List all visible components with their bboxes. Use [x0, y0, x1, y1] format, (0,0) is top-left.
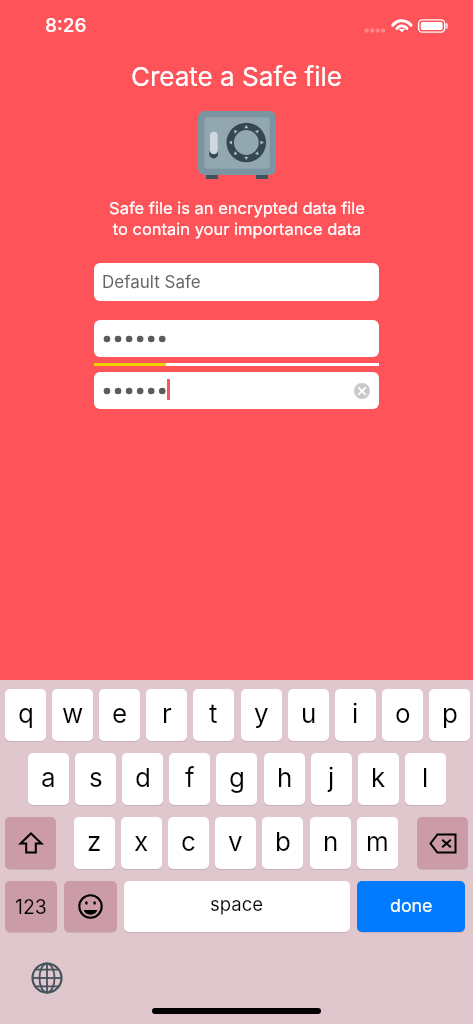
- staticText: q: [18, 698, 34, 729]
- button[interactable]: Backspace: [417, 817, 468, 869]
- staticText: p: [442, 698, 458, 729]
- button[interactable]: f: [169, 753, 210, 805]
- button[interactable]: a: [28, 753, 69, 805]
- staticText: n: [323, 826, 339, 857]
- staticText: m: [366, 826, 389, 857]
- button[interactable]: h: [264, 753, 305, 805]
- button[interactable]: y: [241, 689, 282, 741]
- staticText: Create a Safe file: [131, 61, 342, 92]
- staticText: e: [112, 698, 128, 729]
- staticText: y: [254, 698, 269, 729]
- staticText: g: [229, 762, 245, 793]
- button[interactable]: z: [74, 817, 115, 869]
- button[interactable]: w: [52, 689, 93, 741]
- staticText: 8:26: [45, 14, 87, 37]
- staticText: r: [162, 698, 172, 729]
- button[interactable]: v: [215, 817, 256, 869]
- staticText: t: [209, 698, 218, 729]
- staticText: x: [134, 826, 149, 857]
- button[interactable]: u: [288, 689, 329, 741]
- button[interactable]: p: [429, 689, 470, 741]
- button[interactable]: Emoji: [64, 881, 117, 932]
- button[interactable]: i: [335, 689, 376, 741]
- staticText: l: [422, 762, 429, 793]
- staticText: z: [87, 826, 102, 857]
- staticText: c: [181, 826, 196, 857]
- button[interactable]: r: [146, 689, 187, 741]
- button[interactable]: Clear text: [94, 372, 379, 409]
- button[interactable]: e: [99, 689, 140, 741]
- button[interactable]: o: [382, 689, 423, 741]
- button[interactable]: t: [193, 689, 234, 741]
- button[interactable]: n: [310, 817, 351, 869]
- staticText: b: [275, 826, 291, 857]
- button[interactable]: c: [168, 817, 209, 869]
- button[interactable]: Shift: [5, 817, 56, 869]
- staticText: Default Safe: [102, 272, 201, 293]
- staticText: h: [277, 762, 293, 793]
- staticText: o: [395, 698, 411, 729]
- button[interactable]: [94, 320, 379, 357]
- button[interactable]: m: [357, 817, 398, 869]
- staticText: f: [185, 762, 195, 793]
- button[interactable]: b: [262, 817, 303, 869]
- button[interactable]: g: [216, 753, 257, 805]
- button[interactable]: q: [5, 689, 46, 741]
- button[interactable]: Default Safe: [94, 263, 379, 301]
- button[interactable]: Numbers: [5, 881, 57, 932]
- button[interactable]: l: [405, 753, 446, 805]
- button[interactable]: done: [357, 881, 465, 932]
- button[interactable]: Change keyboard language: [31, 962, 63, 994]
- staticText: w: [62, 698, 84, 729]
- button[interactable]: j: [311, 753, 352, 805]
- staticText: k: [371, 762, 386, 793]
- button[interactable]: k: [358, 753, 399, 805]
- staticText: j: [328, 762, 335, 793]
- staticText: d: [135, 762, 151, 793]
- staticText: v: [228, 826, 243, 857]
- staticText: s: [89, 762, 103, 793]
- staticText: 123: [15, 895, 47, 919]
- button[interactable]: Clear text: [354, 383, 370, 399]
- staticText: a: [41, 762, 56, 793]
- staticText: done: [390, 895, 433, 917]
- staticText: space: [210, 893, 264, 915]
- staticText: Safe file is an encrypted data file to c…: [109, 198, 365, 239]
- button[interactable]: x: [121, 817, 162, 869]
- button[interactable]: space: [124, 881, 350, 932]
- button[interactable]: s: [75, 753, 116, 805]
- staticText: u: [301, 698, 317, 729]
- staticText: i: [352, 698, 359, 729]
- button[interactable]: d: [122, 753, 163, 805]
